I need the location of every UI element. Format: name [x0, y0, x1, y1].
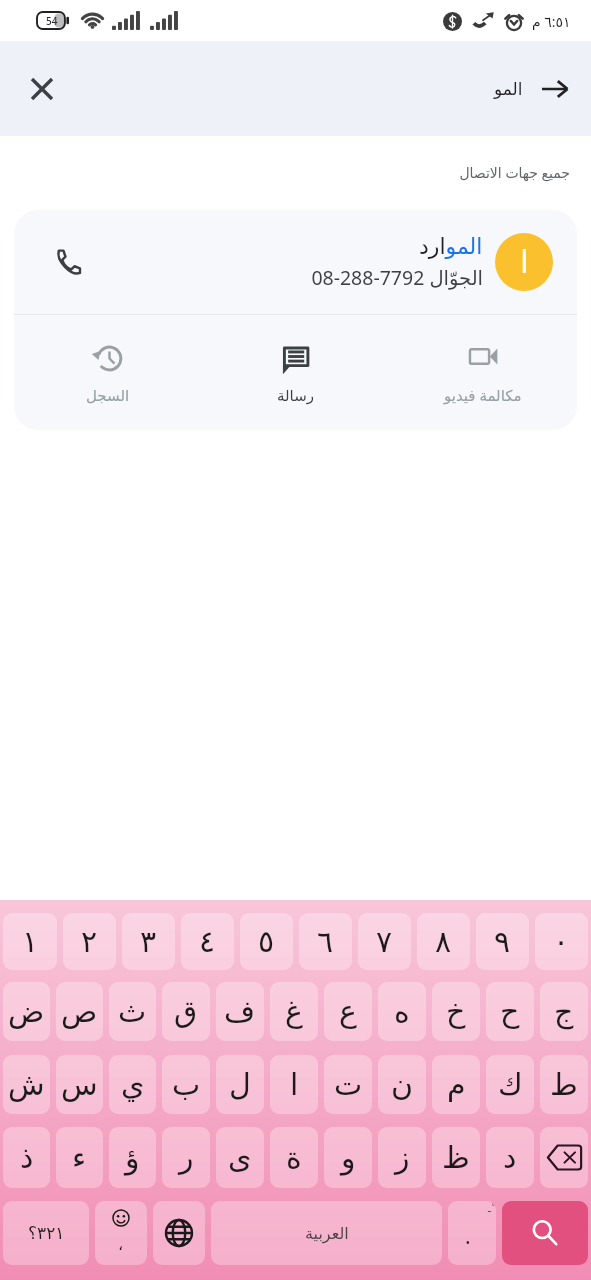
staticText: ٣٢١؟ — [28, 1223, 65, 1243]
button[interactable]: ب — [162, 1055, 210, 1114]
button[interactable]: ء — [56, 1127, 103, 1188]
button[interactable]: ق — [162, 982, 210, 1041]
button[interactable]: الموارد — [14, 210, 577, 314]
staticText: . — [465, 1222, 471, 1251]
button[interactable]: ٤ — [181, 913, 234, 970]
staticText: المو — [494, 79, 523, 99]
staticText: ـْ — [488, 1203, 491, 1215]
staticText: 54 — [46, 14, 58, 28]
button[interactable]: Emoji — [95, 1201, 147, 1265]
button[interactable]: Search — [502, 1201, 588, 1265]
staticText: ٧ — [376, 924, 393, 959]
button[interactable]: Backspace — [540, 1127, 588, 1188]
staticText: ز — [395, 1140, 410, 1175]
button[interactable]: ك — [486, 1055, 534, 1114]
staticText: ى — [228, 1140, 252, 1175]
staticText: ٢ — [81, 924, 98, 959]
staticText: ٣ — [140, 924, 157, 959]
staticText: ك — [498, 1067, 523, 1102]
staticText: ١ — [22, 924, 39, 959]
button[interactable]: ذ — [3, 1127, 50, 1188]
button[interactable]: و — [324, 1127, 372, 1188]
staticText: س — [61, 1067, 98, 1102]
staticText: ٠ — [553, 924, 570, 959]
button[interactable]: ٨ — [417, 913, 470, 970]
staticText: ل — [229, 1067, 251, 1102]
button[interactable]: ج — [540, 982, 588, 1041]
button[interactable]: ط — [540, 1055, 588, 1114]
staticText: ة — [286, 1140, 302, 1175]
button[interactable]: خ — [432, 982, 480, 1041]
button[interactable]: رسالة — [201, 315, 389, 430]
button[interactable]: العربية — [211, 1201, 442, 1265]
button[interactable]: ح — [486, 982, 534, 1041]
staticText: مكالمة فيديو — [444, 385, 522, 405]
button[interactable]: ظ — [432, 1127, 480, 1188]
button[interactable]: ع — [324, 982, 372, 1041]
staticText: السجل — [86, 387, 130, 404]
button[interactable]: مكالمة فيديو — [389, 315, 577, 430]
staticText: ي — [121, 1067, 145, 1102]
button[interactable]: ٢ — [63, 913, 116, 970]
button[interactable]: ٣٢١؟ — [3, 1201, 89, 1265]
button[interactable]: ٣ — [122, 913, 175, 970]
staticText: ‏٦:٥١ م — [532, 12, 571, 31]
staticText: ج — [554, 994, 574, 1029]
staticText: ض — [8, 994, 45, 1029]
staticText: ب — [172, 1067, 201, 1102]
button[interactable]: ٥ — [240, 913, 293, 970]
staticText: ع — [339, 994, 357, 1029]
button[interactable]: غ — [270, 982, 318, 1041]
staticText: و — [341, 1140, 356, 1175]
staticText: ر — [179, 1140, 194, 1175]
staticText: ٦ — [317, 924, 334, 959]
button[interactable]: ي — [109, 1055, 156, 1114]
staticText: ؤ — [125, 1140, 140, 1175]
staticText: ف — [224, 994, 256, 1029]
staticText: د — [503, 1140, 517, 1175]
staticText: الموارد — [419, 234, 483, 260]
button[interactable]: Close search — [18, 65, 66, 113]
button[interactable]: ٩ — [476, 913, 529, 970]
button[interactable]: ز — [378, 1127, 426, 1188]
staticText: ٤ — [199, 924, 216, 959]
button[interactable]: Change language — [153, 1201, 205, 1265]
staticText: ا — [520, 244, 529, 280]
button[interactable]: ش — [3, 1055, 50, 1114]
button[interactable]: Search — [531, 65, 579, 113]
button[interactable]: م — [432, 1055, 480, 1114]
button[interactable]: ى — [216, 1127, 264, 1188]
button[interactable]: ؤ — [109, 1127, 156, 1188]
button[interactable]: ت — [324, 1055, 372, 1114]
button[interactable]: ف — [216, 982, 264, 1041]
staticText: ص — [61, 994, 98, 1029]
button[interactable]: ٧ — [358, 913, 411, 970]
button[interactable]: ٠ — [535, 913, 588, 970]
button[interactable]: د — [486, 1127, 534, 1188]
staticText: ش — [8, 1067, 45, 1102]
staticText: ق — [174, 994, 198, 1029]
button[interactable]: س — [56, 1055, 103, 1114]
button[interactable]: ر — [162, 1127, 210, 1188]
staticText: غ — [285, 994, 303, 1029]
staticText: ط — [550, 1067, 578, 1102]
staticText: ٨ — [435, 924, 452, 959]
staticText: ٩ — [494, 924, 511, 959]
button[interactable]: . — [448, 1201, 496, 1265]
button[interactable]: ص — [56, 982, 103, 1041]
button[interactable]: ض — [3, 982, 50, 1041]
staticText: ظ — [442, 1140, 470, 1175]
button[interactable]: ن — [378, 1055, 426, 1114]
staticText: ث — [118, 994, 147, 1029]
button[interactable]: السجل — [14, 315, 201, 430]
staticText: ه — [394, 994, 410, 1029]
button[interactable]: ١ — [3, 913, 57, 970]
button[interactable]: ة — [270, 1127, 318, 1188]
button[interactable]: ا — [270, 1055, 318, 1114]
button[interactable]: ه — [378, 982, 426, 1041]
button[interactable]: ٦ — [299, 913, 352, 970]
button[interactable]: ث — [109, 982, 156, 1041]
staticText: ن — [391, 1067, 414, 1102]
button[interactable]: ل — [216, 1055, 264, 1114]
staticText: ء — [72, 1140, 87, 1175]
